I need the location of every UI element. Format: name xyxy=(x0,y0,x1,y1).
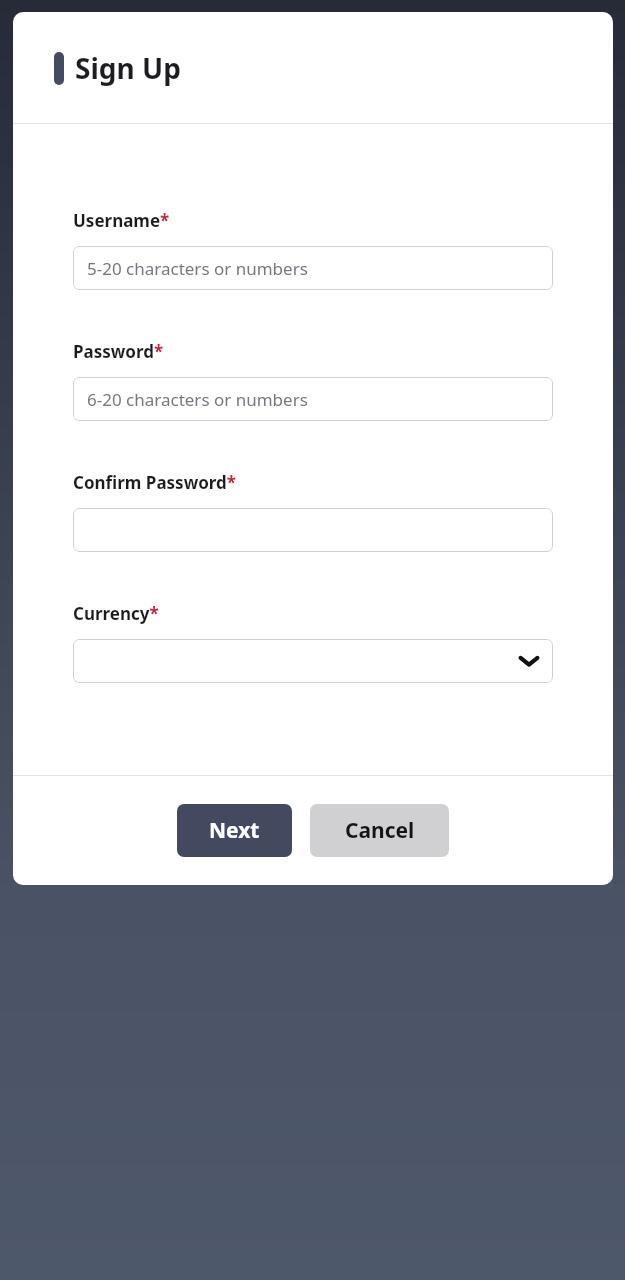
button[interactable]: 5-20 characters or numbers xyxy=(73,246,553,290)
staticText: 5-20 characters or numbers xyxy=(87,257,308,280)
staticText: Sign Up xyxy=(75,49,181,87)
staticText: Currency* xyxy=(73,602,159,625)
button[interactable] xyxy=(73,508,553,552)
button[interactable]: 6-20 characters or numbers xyxy=(73,377,553,421)
staticText: 6-20 characters or numbers xyxy=(87,388,308,411)
staticText: Next xyxy=(209,816,260,845)
staticText: Cancel xyxy=(345,816,415,845)
staticText: Username* xyxy=(73,209,170,232)
button[interactable]: Next xyxy=(177,804,292,857)
staticText: Confirm Password* xyxy=(73,471,237,494)
button[interactable] xyxy=(73,639,553,683)
staticText: Password* xyxy=(73,340,164,363)
button[interactable]: Cancel xyxy=(310,804,449,857)
